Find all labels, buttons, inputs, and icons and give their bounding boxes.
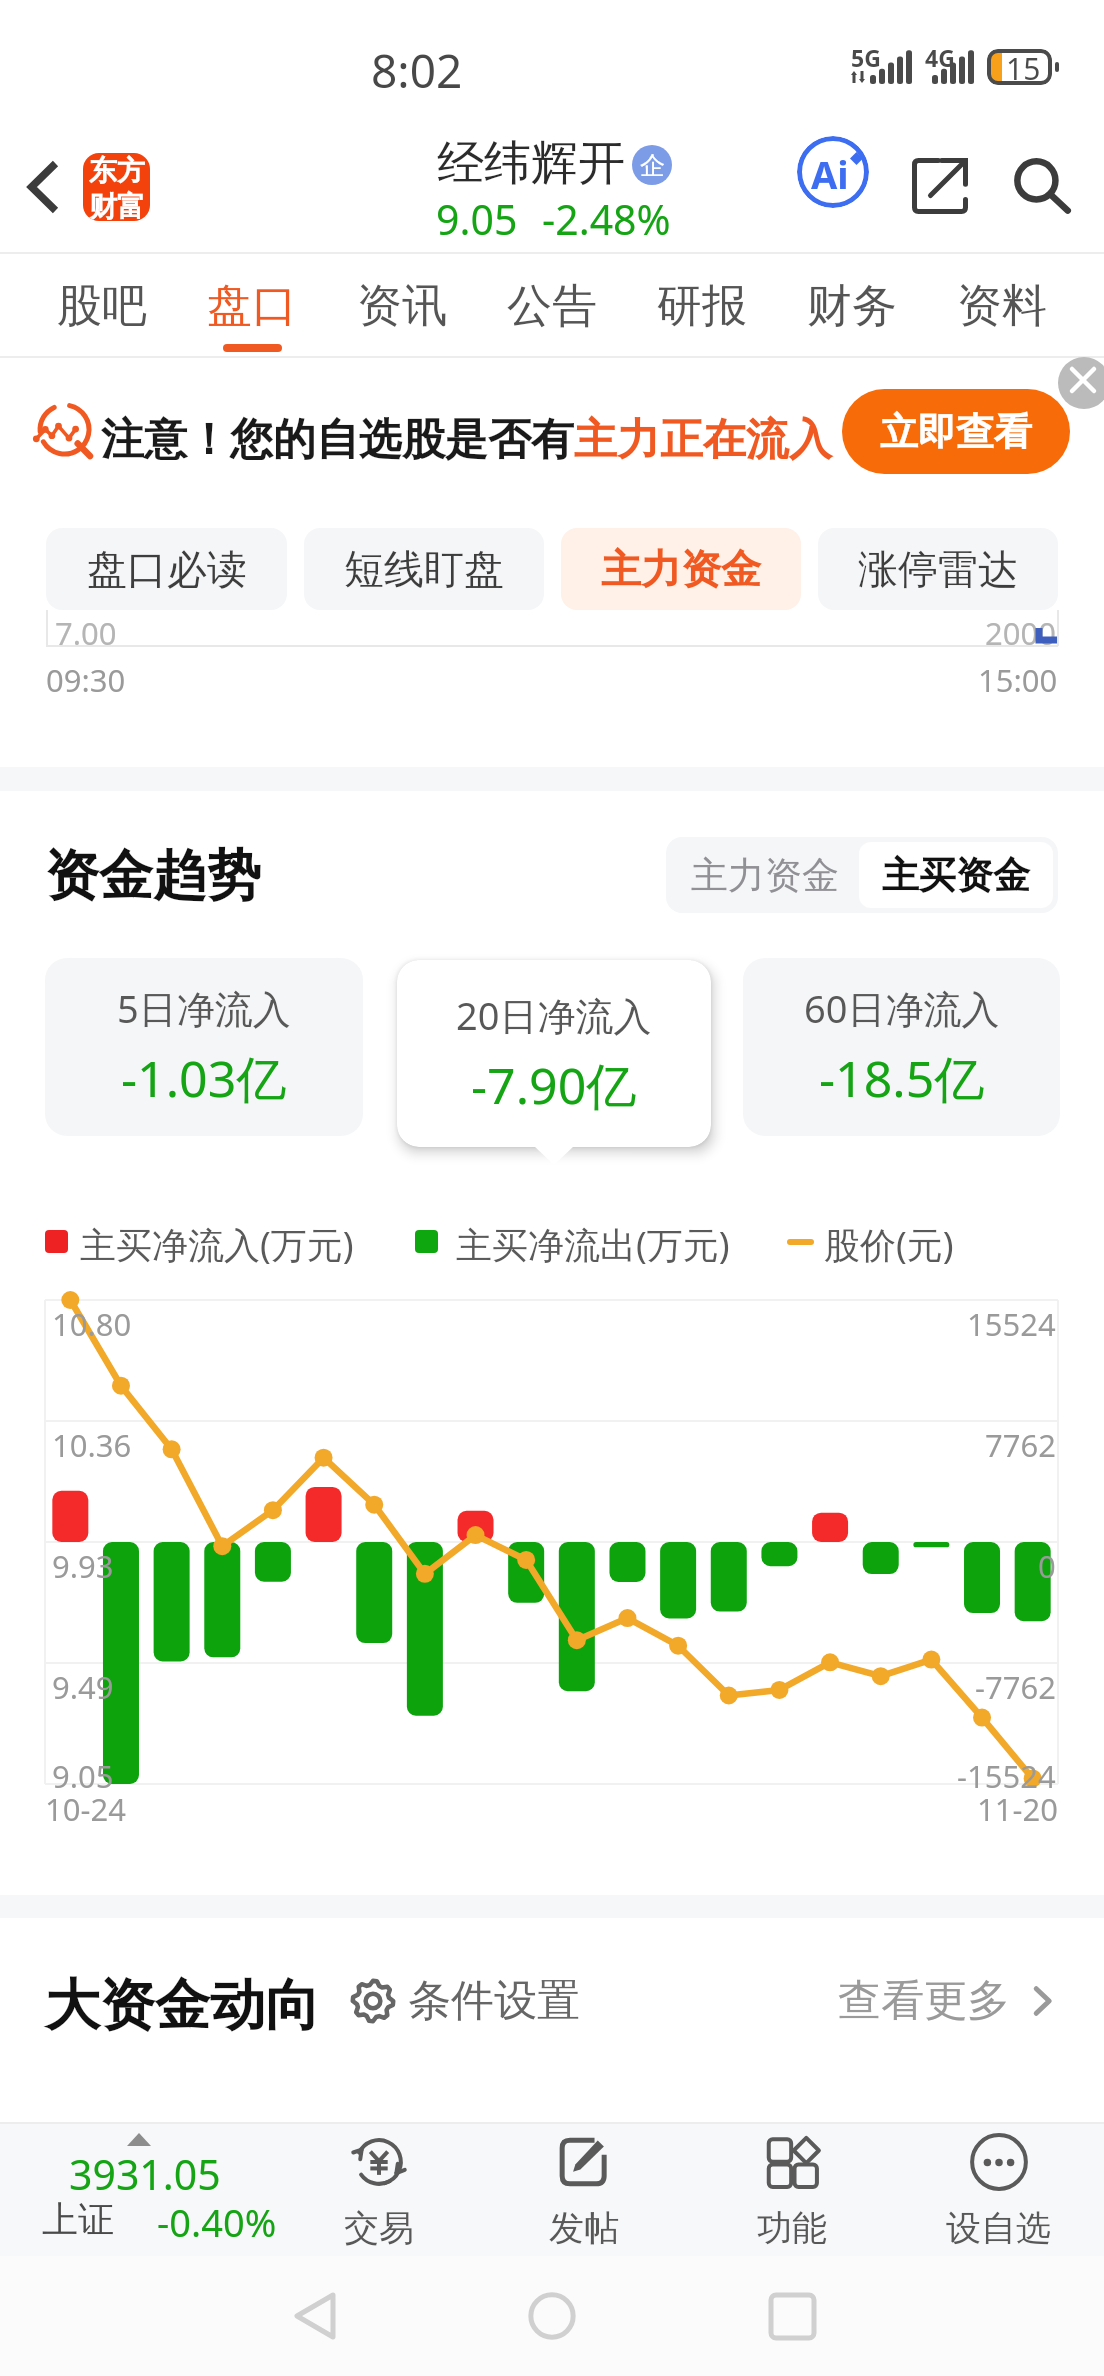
button[interactable]: 盘口必读 [46, 528, 287, 610]
staticText: 10.36 [52, 1424, 132, 1466]
button[interactable]: 发帖 [499, 2122, 669, 2256]
staticText: 11-20 [977, 1788, 1058, 1830]
staticText: 主买净流出(万元) [456, 1220, 730, 1264]
staticText: 盘口 [207, 278, 297, 335]
staticText: 主力资金 [691, 852, 839, 899]
staticText: 股价(元) [824, 1220, 954, 1264]
staticText: 查看更多 [838, 1974, 1010, 2028]
staticText: 资讯 [357, 278, 447, 335]
button[interactable]: 研报 [657, 252, 747, 358]
staticText: -18.5亿 [819, 1044, 985, 1112]
staticText: -15524 [957, 1755, 1056, 1797]
button[interactable]: Search [1000, 144, 1084, 228]
staticText: 3931.05 [69, 2146, 221, 2202]
button[interactable]: 60日净流入 [743, 958, 1060, 1136]
staticText: 2000 [985, 612, 1056, 646]
staticText: 企 [640, 150, 665, 181]
staticText: 设自选 [946, 2206, 1051, 2250]
staticText: 资料 [957, 278, 1047, 335]
staticText: 条件设置 [408, 1974, 580, 2028]
staticText: 20日净流入 [456, 989, 652, 1041]
button[interactable]: 盘口 [207, 252, 297, 358]
button[interactable]: 资讯 [357, 252, 447, 358]
staticText: 5G [851, 42, 881, 73]
staticText: 7762 [985, 1424, 1056, 1466]
staticText: 9.93 [52, 1545, 114, 1587]
staticText: 10-24 [45, 1788, 126, 1830]
button[interactable]: 涨停雷达 [818, 528, 1058, 610]
button[interactable]: 查看更多 [838, 1974, 1060, 2028]
staticText: 上证 [42, 2197, 114, 2242]
staticText: 发帖 [549, 2206, 619, 2250]
button[interactable]: 主力资金 [671, 842, 859, 908]
staticText: -7.90亿 [471, 1051, 637, 1119]
button[interactable]: 财务 [807, 252, 897, 358]
staticText: 主买资金 [882, 852, 1030, 899]
staticText: -7762 [975, 1666, 1056, 1708]
button[interactable]: 交易 [294, 2122, 464, 2256]
staticText: 主力正在流入 [574, 413, 832, 467]
staticText: 短线盯盘 [344, 544, 504, 594]
button[interactable]: 股吧 [57, 252, 147, 358]
staticText: 4G [925, 42, 955, 73]
staticText: 功能 [757, 2206, 827, 2250]
staticText: 股吧 [57, 278, 147, 335]
staticText: 资金趋势 [45, 842, 261, 910]
button[interactable]: 设自选 [913, 2122, 1083, 2256]
staticText: 东方 [89, 153, 145, 188]
button[interactable]: AI assistant [791, 130, 875, 214]
staticText: 大资金动向 [45, 1971, 320, 2040]
staticText: 公告 [507, 278, 597, 335]
button[interactable]: 20日净流入 [397, 960, 711, 1147]
staticText: 8:02 [371, 39, 463, 102]
button[interactable]: Back [0, 139, 80, 233]
staticText: 立即查看 [880, 408, 1032, 456]
staticText: 交易 [344, 2206, 414, 2250]
staticText: 15524 [967, 1303, 1056, 1345]
staticText: 9.05 [52, 1755, 114, 1797]
button[interactable]: Close banner [1058, 357, 1104, 409]
staticText: 财务 [807, 278, 897, 335]
staticText: 15 [1006, 49, 1041, 84]
button[interactable]: 条件设置 [350, 1974, 580, 2028]
staticText: 7.00 [55, 612, 117, 646]
staticText: -2.48% [542, 191, 671, 247]
staticText: 研报 [657, 278, 747, 335]
button[interactable]: 主力资金 [561, 528, 801, 610]
staticText: 9.05 [436, 191, 518, 247]
staticText: -0.40% [157, 2196, 277, 2248]
staticText: 涨停雷达 [858, 544, 1018, 594]
staticText: 注意！您的自选股是否有 [101, 413, 574, 467]
button[interactable]: 主买资金 [859, 842, 1053, 908]
button[interactable]: Home [492, 2256, 612, 2376]
staticText: 09:30 [46, 659, 126, 701]
staticText: 经纬辉开 [437, 134, 625, 193]
button[interactable]: Back [255, 2256, 375, 2376]
button[interactable]: 资料 [957, 252, 1047, 358]
button[interactable]: 公告 [507, 252, 597, 358]
staticText: Ai [811, 148, 849, 200]
staticText: 15:00 [978, 659, 1058, 701]
staticText: -1.03亿 [121, 1044, 287, 1112]
staticText: 主力资金 [601, 544, 761, 594]
button[interactable]: 功能 [707, 2122, 877, 2256]
button[interactable]: 短线盯盘 [304, 528, 544, 610]
staticText: 0 [1038, 1545, 1056, 1587]
staticText: 盘口必读 [87, 544, 247, 594]
button[interactable]: 5日净流入 [45, 958, 363, 1136]
button[interactable]: Share [898, 144, 982, 228]
button[interactable]: Recents [732, 2256, 852, 2376]
staticText: 主买净流入(万元) [80, 1220, 354, 1264]
button[interactable]: Eastmoney [83, 153, 150, 221]
staticText: 5日净流入 [117, 982, 291, 1034]
button[interactable]: 立即查看 [842, 389, 1070, 474]
button[interactable]: 3931.05 [0, 2122, 300, 2256]
staticText: 9.49 [52, 1666, 114, 1708]
staticText: 10.80 [52, 1303, 132, 1345]
staticText: 财富 [89, 189, 145, 221]
staticText: 60日净流入 [804, 982, 1000, 1034]
